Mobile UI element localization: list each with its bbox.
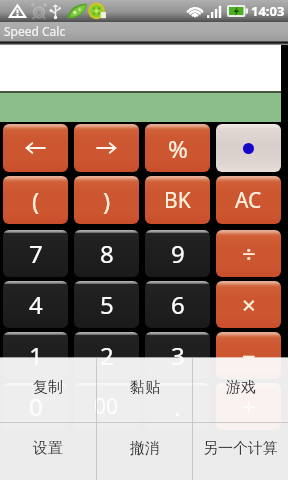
staticText: 4 xyxy=(29,288,43,321)
button[interactable]: 4 xyxy=(3,281,68,328)
staticText: 3 xyxy=(171,339,185,372)
button[interactable]: 0 xyxy=(3,383,68,430)
staticText: 8 xyxy=(100,237,114,270)
button[interactable]: 5 xyxy=(74,281,139,328)
button[interactable]: BK xyxy=(145,176,210,224)
button[interactable]: 9 xyxy=(145,230,210,277)
button[interactable]: 00 xyxy=(74,383,139,430)
button[interactable]: 另一个计算 xyxy=(193,423,288,480)
button[interactable]: 游戏 xyxy=(193,358,288,422)
button[interactable]: AC xyxy=(216,176,281,224)
staticText: AC xyxy=(235,186,262,215)
staticText: BK xyxy=(164,186,191,215)
button[interactable]: 复制 xyxy=(0,358,96,422)
button[interactable]: Decimal point xyxy=(216,124,281,172)
staticText: 0 xyxy=(29,390,43,423)
staticText: 撤消 xyxy=(130,439,160,458)
button[interactable]: 6 xyxy=(145,281,210,328)
staticText: ( xyxy=(32,184,40,217)
button[interactable]: Move left xyxy=(3,124,68,172)
button[interactable]: − xyxy=(216,332,281,379)
staticText: × xyxy=(242,288,256,321)
staticText: 9 xyxy=(171,237,185,270)
button[interactable]: ÷ xyxy=(216,230,281,277)
staticText: 00 xyxy=(94,392,119,421)
staticText: 5 xyxy=(100,288,114,321)
staticText: 1 xyxy=(29,339,43,372)
staticText: Speed Calc xyxy=(4,23,66,39)
staticText: 7 xyxy=(29,237,43,270)
button[interactable]: × xyxy=(216,281,281,328)
staticText: 黏贴 xyxy=(130,378,160,397)
staticText: 设置 xyxy=(33,439,63,458)
staticText: ÷ xyxy=(242,237,256,270)
button[interactable]: 7 xyxy=(3,230,68,277)
staticText: 游戏 xyxy=(226,378,256,397)
staticText: 2 xyxy=(100,339,114,372)
staticText: . xyxy=(174,390,181,423)
button[interactable]: 1 xyxy=(3,332,68,379)
button[interactable]: ( xyxy=(3,176,68,224)
staticText: − xyxy=(242,339,256,372)
button[interactable]: . xyxy=(145,383,210,430)
button[interactable]: 2 xyxy=(74,332,139,379)
staticText: + xyxy=(242,390,256,423)
button[interactable]: 3 xyxy=(145,332,210,379)
button[interactable]: ) xyxy=(74,176,139,224)
staticText: % xyxy=(168,132,188,165)
button[interactable]: 8 xyxy=(74,230,139,277)
button[interactable]: 设置 xyxy=(0,423,96,480)
button[interactable]: Move right xyxy=(74,124,139,172)
staticText: 14:03 xyxy=(251,2,285,20)
button[interactable]: % xyxy=(145,124,210,172)
button[interactable]: + xyxy=(216,383,281,430)
staticText: 另一个计算 xyxy=(203,439,278,458)
staticText: 复制 xyxy=(33,378,63,397)
staticText: 6 xyxy=(171,288,185,321)
button[interactable]: 黏贴 xyxy=(97,358,192,422)
staticText: ) xyxy=(103,184,111,217)
button[interactable]: 撤消 xyxy=(97,423,192,480)
